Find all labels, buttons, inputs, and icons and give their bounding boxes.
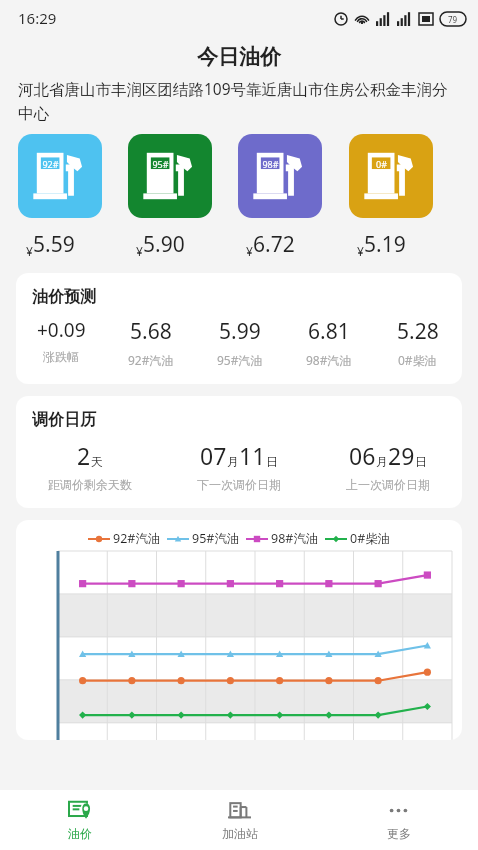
staticText: 16:29 [18, 8, 57, 28]
staticText: ¥ [136, 243, 143, 259]
staticText: 92# [41, 158, 60, 170]
staticText: 今日油价 [197, 44, 281, 70]
button[interactable]: 0# [349, 134, 460, 259]
staticText: 涨跌幅 [43, 349, 79, 364]
staticText: 5.90 [143, 230, 185, 259]
staticText: 月 [227, 454, 239, 469]
button[interactable]: 加油站 [160, 790, 319, 850]
staticText: 5.59 [33, 230, 75, 259]
staticText: +0.09 [37, 317, 86, 343]
staticText: 95#汽油 [217, 352, 263, 368]
staticText: 5.99 [219, 317, 261, 346]
staticText: 加油站 [222, 826, 258, 841]
staticText: 2 [77, 440, 91, 471]
staticText: 5.68 [130, 317, 172, 346]
staticText: 95# [151, 158, 170, 170]
staticText: ¥ [246, 243, 253, 259]
button[interactable]: 油价 [0, 790, 160, 850]
staticText: 92#汽油 [113, 530, 161, 547]
staticText: 98#汽油 [271, 530, 319, 547]
staticText: 6.81 [308, 317, 350, 346]
staticText: 95#汽油 [192, 530, 240, 547]
staticText: 油价 [68, 826, 92, 841]
button[interactable]: 95# [128, 134, 238, 259]
staticText: 98#汽油 [306, 352, 352, 368]
staticText: 11 [239, 440, 266, 471]
button[interactable]: 98# [238, 134, 349, 259]
staticText: 92#汽油 [128, 352, 174, 368]
staticText: 下一次调价日期 [197, 477, 281, 492]
staticText: 07 [200, 440, 227, 471]
staticText: ¥ [357, 243, 364, 259]
staticText: 79 [448, 14, 458, 25]
staticText: 河北省唐山市丰润区团结路109号靠近唐山市住房公积金丰润分中心 [18, 78, 460, 124]
staticText: 6.72 [253, 230, 295, 259]
staticText: 06 [349, 440, 376, 471]
staticText: 29 [388, 440, 415, 471]
staticText: 日 [415, 454, 427, 469]
button[interactable]: 92# [18, 134, 128, 259]
staticText: 更多 [387, 826, 411, 841]
staticText: 月 [376, 454, 388, 469]
staticText: 5.19 [364, 230, 406, 259]
staticText: 天 [91, 454, 103, 469]
staticText: 98# [261, 158, 280, 170]
staticText: 距调价剩余天数 [48, 477, 132, 492]
staticText: 日 [266, 454, 278, 469]
staticText: 5.28 [397, 317, 439, 346]
staticText: 0#柴油 [350, 530, 391, 547]
staticText: ¥ [26, 243, 33, 259]
staticText: 调价日历 [32, 410, 96, 430]
button[interactable]: 更多 [319, 790, 478, 850]
staticText: 油价预测 [32, 287, 96, 307]
staticText: 上一次调价日期 [346, 477, 430, 492]
staticText: 0#柴油 [398, 352, 437, 368]
staticText: 0# [372, 158, 391, 170]
